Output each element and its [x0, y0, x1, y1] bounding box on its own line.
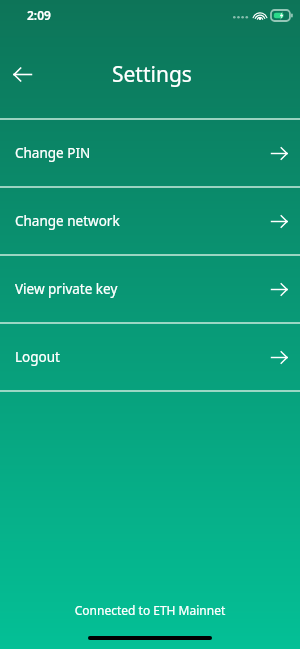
- button[interactable]: Change PIN: [0, 120, 300, 186]
- button[interactable]: Back: [10, 62, 34, 86]
- staticText: Change network: [15, 212, 120, 230]
- staticText: View private key: [15, 280, 118, 298]
- staticText: Connected to ETH Mainnet: [0, 602, 300, 618]
- button[interactable]: View private key: [0, 256, 300, 322]
- staticText: 2:09: [27, 7, 51, 23]
- button[interactable]: Logout: [0, 324, 300, 390]
- staticText: Change PIN: [15, 144, 91, 162]
- button[interactable]: Change network: [0, 188, 300, 254]
- staticText: Settings: [112, 60, 192, 89]
- staticText: Logout: [15, 348, 60, 366]
